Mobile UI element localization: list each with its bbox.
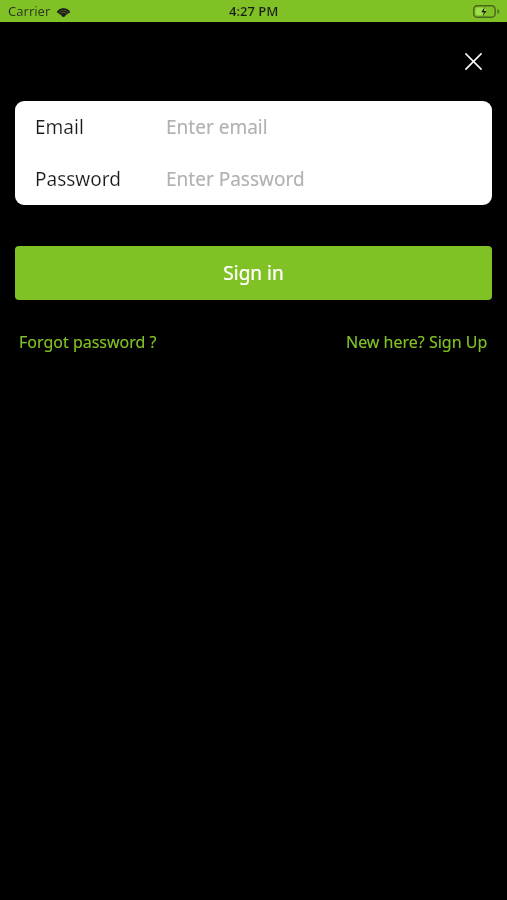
staticText: Email bbox=[35, 114, 84, 140]
button[interactable]: Forgot password ? bbox=[19, 331, 157, 353]
staticText: Forgot password ? bbox=[19, 331, 157, 353]
staticText: 4:27 PM bbox=[229, 2, 279, 20]
button[interactable]: Sign in bbox=[15, 246, 492, 300]
staticText: Enter email bbox=[166, 114, 268, 140]
staticText: Password bbox=[35, 166, 121, 192]
staticText: Enter Password bbox=[166, 166, 305, 192]
button[interactable]: New here? Sign Up bbox=[346, 331, 488, 353]
staticText: Carrier bbox=[8, 2, 51, 20]
button[interactable]: Password bbox=[15, 153, 492, 205]
staticText: New here? Sign Up bbox=[346, 331, 488, 353]
button[interactable]: Close bbox=[453, 41, 493, 81]
button[interactable]: Email bbox=[15, 101, 492, 153]
staticText: Sign in bbox=[223, 260, 284, 286]
